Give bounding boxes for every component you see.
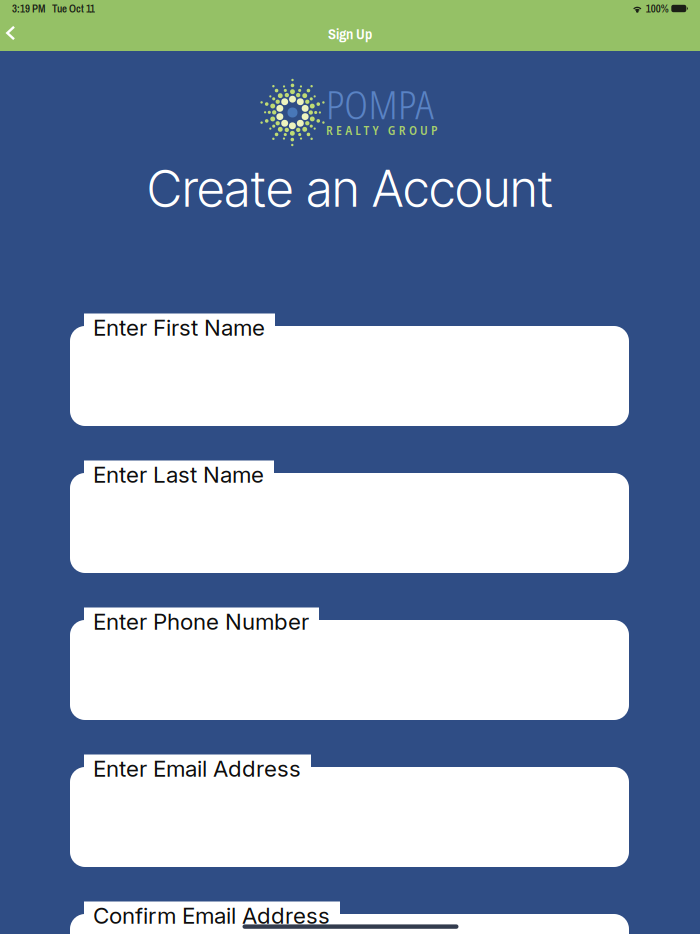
staticText: Confirm Email Address [93,902,330,929]
button[interactable]: Enter First Name [70,313,629,426]
staticText: Enter Last Name [93,461,264,488]
staticText: Sign Up [328,24,372,44]
staticText: POMPA [326,77,434,131]
staticText: Tue Oct 11 [52,1,95,16]
staticText: Create an Account [147,158,553,219]
staticText: Enter First Name [93,314,265,341]
button[interactable]: Enter Email Address [70,754,629,867]
staticText: Enter Phone Number [93,608,309,635]
staticText: 3:19 PM [12,1,45,16]
button[interactable]: Back [0,21,30,45]
staticText: REALTY GROUP [326,121,438,139]
button[interactable]: Enter Phone Number [70,607,629,720]
staticText: Enter Email Address [93,755,301,782]
staticText: 100% [646,1,669,16]
button[interactable]: Enter Last Name [70,460,629,573]
button[interactable]: Confirm Email Address [70,901,629,934]
